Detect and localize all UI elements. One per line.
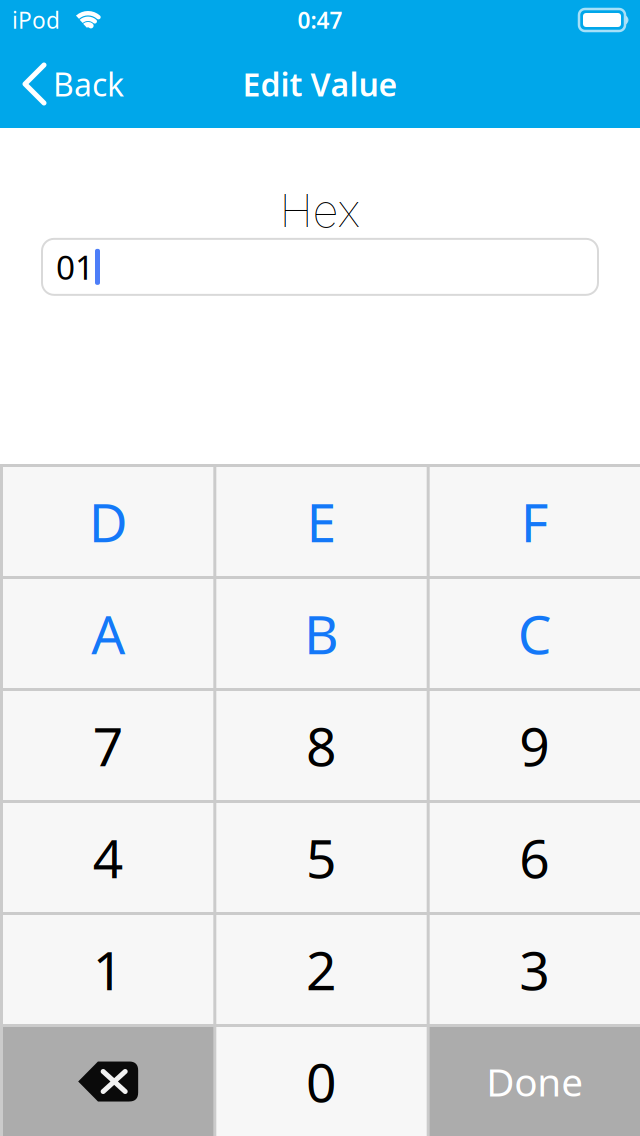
staticText: 01 [56,245,94,289]
button[interactable]: F [430,467,640,576]
staticText: 9 [519,710,550,781]
staticText: Hex [279,183,360,238]
button[interactable]: 1 [3,915,213,1024]
staticText: E [306,486,336,557]
staticText: 8 [306,710,337,781]
staticText: 2 [306,934,337,1005]
staticText: 0 [306,1046,337,1117]
button[interactable]: 8 [216,691,427,800]
button[interactable]: 9 [430,691,640,800]
staticText: D [89,486,128,557]
button[interactable]: Back [25,63,124,105]
staticText: iPod [12,5,60,35]
staticText: 0:47 [297,5,342,35]
staticText: 7 [93,710,124,781]
staticText: 5 [306,822,337,893]
button[interactable]: A [3,579,213,688]
staticText: F [521,486,549,557]
button[interactable]: 01 [41,238,599,296]
button[interactable]: D [3,467,213,576]
button[interactable]: 4 [3,803,213,912]
staticText: 3 [519,934,550,1005]
button[interactable]: 6 [430,803,640,912]
button[interactable]: C [430,579,640,688]
button[interactable]: 7 [3,691,213,800]
staticText: C [518,598,552,669]
button[interactable]: B [216,579,427,688]
staticText: Back [53,63,124,105]
staticText: Edit Value [242,63,397,105]
button[interactable]: 3 [430,915,640,1024]
button[interactable]: 2 [216,915,427,1024]
button[interactable]: 0 [216,1027,427,1136]
button[interactable]: E [216,467,427,576]
button[interactable]: Done [430,1027,640,1136]
staticText: 1 [93,934,124,1005]
staticText: 6 [519,822,550,893]
staticText: B [304,598,339,669]
staticText: A [91,598,125,669]
staticText: 4 [93,822,124,893]
button[interactable]: 5 [216,803,427,912]
button[interactable] [3,1027,213,1136]
staticText: Done [486,1056,583,1107]
